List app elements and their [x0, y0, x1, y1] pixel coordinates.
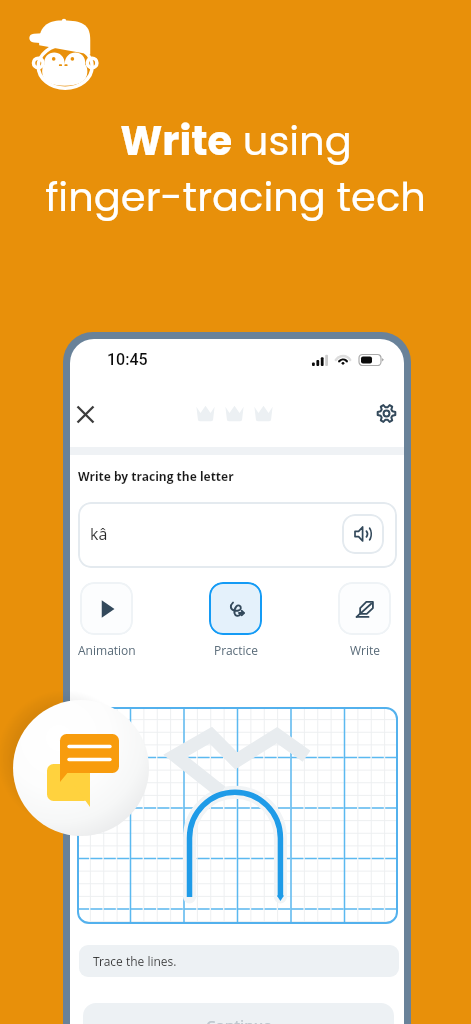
staticText: Continue — [206, 1015, 272, 1024]
staticText: Write using — [120, 113, 352, 169]
button[interactable]: Practice — [204, 582, 267, 658]
button[interactable]: Animation — [75, 582, 138, 658]
staticText: kâ — [90, 523, 108, 545]
staticText: 10:45 — [107, 350, 148, 369]
staticText: Write by tracing the letter — [78, 468, 234, 484]
staticText: Animation — [78, 642, 136, 658]
button[interactable]: Play audio — [342, 514, 384, 554]
button[interactable]: Chat — [13, 700, 149, 836]
staticText: Write — [350, 642, 380, 658]
staticText: Trace the lines. — [93, 953, 177, 969]
button[interactable]: Close — [70, 395, 104, 433]
button[interactable]: Settings — [367, 394, 404, 432]
button[interactable]: Continue — [83, 1003, 394, 1024]
staticText: Practice — [214, 642, 258, 658]
staticText: finger-tracing tech — [45, 169, 426, 225]
button[interactable]: Write — [333, 582, 396, 658]
